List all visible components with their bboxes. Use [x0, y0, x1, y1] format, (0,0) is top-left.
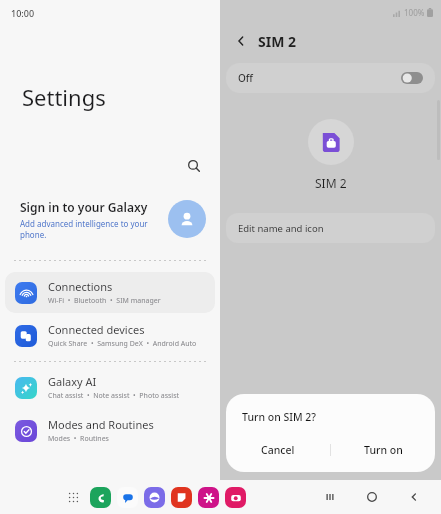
button[interactable]: Recents — [317, 484, 343, 510]
staticText: 10:00 — [11, 7, 35, 19]
staticText: Turn on — [364, 443, 403, 457]
button[interactable]: Turn on — [331, 438, 435, 462]
button[interactable]: Off — [226, 63, 435, 93]
staticText: 100% — [404, 7, 425, 18]
button[interactable]: Galaxy AI — [5, 367, 215, 408]
staticText: Settings — [22, 82, 106, 112]
staticText: Quick Share • Samsung DeX • Android Auto — [48, 339, 197, 349]
staticText: Modes and Routines — [48, 417, 154, 432]
button[interactable]: Cancel — [226, 438, 330, 462]
staticText: Sign in to your Galaxy — [20, 199, 148, 215]
button[interactable]: Apps — [62, 486, 84, 508]
button[interactable]: Galaxy Store — [198, 487, 219, 508]
button[interactable]: Messages — [117, 487, 138, 508]
button[interactable]: Connected devices — [5, 315, 215, 356]
staticText: Connections — [48, 279, 113, 294]
staticText: Wi-Fi • Bluetooth • SIM manager — [48, 296, 161, 306]
button[interactable]: Back — [230, 30, 252, 52]
staticText: SIM 2 — [258, 32, 297, 51]
button[interactable]: Connections — [5, 272, 215, 313]
staticText: Cancel — [261, 443, 295, 457]
staticText: Chat assist • Note assist • Photo assist — [48, 391, 180, 401]
button[interactable]: Internet — [144, 487, 165, 508]
button[interactable]: Search — [182, 154, 206, 178]
staticText: Off — [238, 71, 253, 85]
staticText: Connected devices — [48, 322, 145, 337]
button[interactable]: Camera — [225, 487, 246, 508]
staticText: Modes • Routines — [48, 434, 109, 444]
button[interactable]: Edit name and icon — [226, 213, 435, 243]
button[interactable]: Notes — [171, 487, 192, 508]
button[interactable]: Home — [359, 484, 385, 510]
staticText: SIM 2 — [315, 175, 347, 191]
staticText: Turn on SIM 2? — [242, 410, 317, 424]
staticText: Edit name and icon — [238, 222, 324, 235]
staticText: Galaxy AI — [48, 374, 97, 389]
staticText: Add advanced intelligence to your phone. — [20, 218, 160, 240]
button[interactable]: Sign in to your Galaxy — [0, 188, 220, 250]
button[interactable]: Back — [401, 484, 427, 510]
button[interactable]: Modes and Routines — [5, 410, 215, 451]
button[interactable]: Phone — [90, 487, 111, 508]
